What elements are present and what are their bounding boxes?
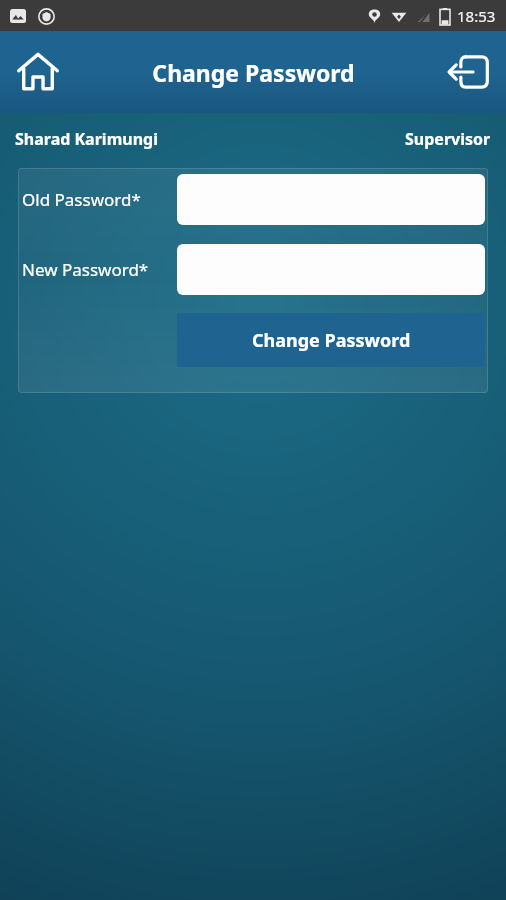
staticText: Supervisor bbox=[405, 128, 491, 150]
button[interactable]: New Password* bbox=[177, 244, 485, 295]
button[interactable]: Old Password* bbox=[177, 174, 485, 225]
staticText: Change Password bbox=[252, 328, 411, 353]
button[interactable]: Logout bbox=[442, 46, 494, 98]
button[interactable]: Change Password bbox=[177, 313, 485, 367]
staticText: New Password* bbox=[22, 258, 149, 281]
button[interactable]: Home bbox=[12, 46, 64, 98]
staticText: 18:53 bbox=[457, 6, 496, 26]
staticText: Old Password* bbox=[22, 188, 141, 211]
staticText: Sharad Karimungi bbox=[15, 128, 158, 150]
staticText: Change Password bbox=[152, 57, 355, 88]
